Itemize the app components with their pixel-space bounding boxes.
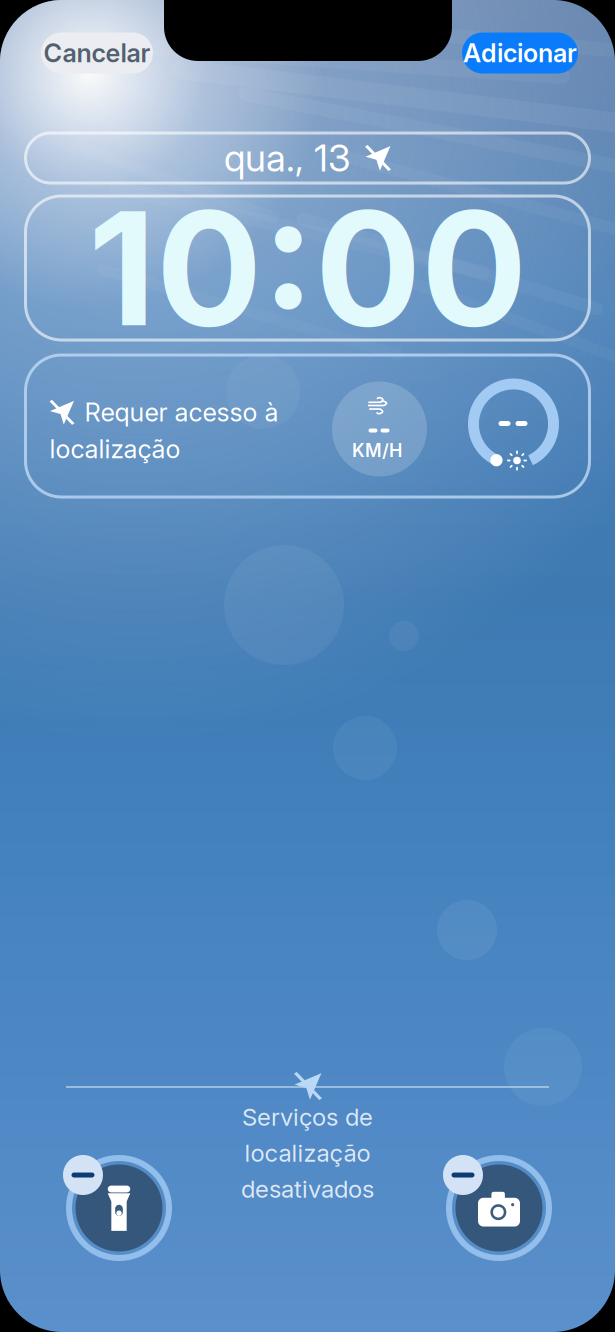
staticText: KM/H xyxy=(352,440,402,461)
staticText: qua., 13 xyxy=(224,135,351,181)
staticText: localização xyxy=(244,1138,370,1167)
staticText: Requer acesso à xyxy=(84,397,278,428)
staticText: desativados xyxy=(241,1174,374,1203)
staticText: localização xyxy=(49,434,180,464)
button[interactable]: Câmera xyxy=(419,1128,551,1260)
button[interactable]: Cancelar xyxy=(41,32,153,73)
staticText: Cancelar xyxy=(43,38,150,68)
button[interactable]: Adicionar xyxy=(462,32,578,73)
staticText: 10:00 xyxy=(88,173,527,363)
button[interactable]: Lanterna xyxy=(39,1128,171,1260)
staticText: Adicionar xyxy=(463,38,577,68)
staticText: Serviços de xyxy=(242,1102,373,1131)
